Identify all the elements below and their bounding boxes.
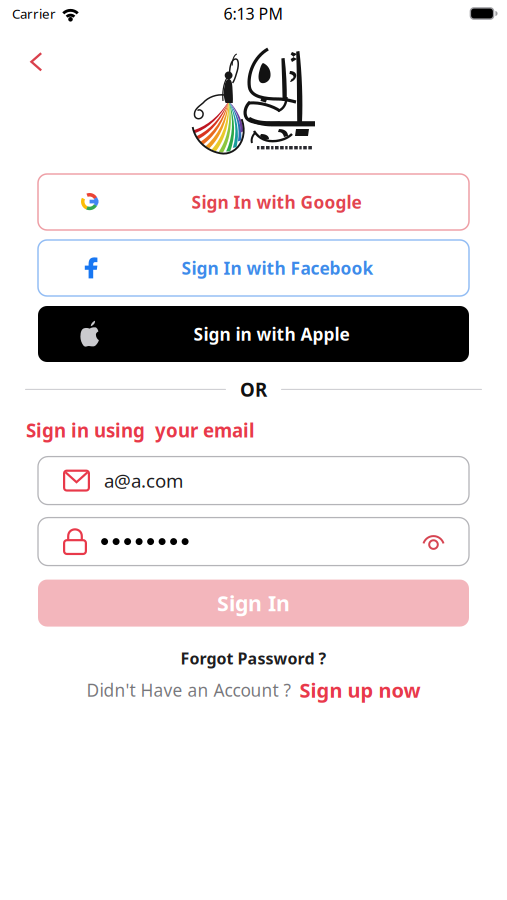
button[interactable]: Sign In [38, 580, 469, 627]
button[interactable]: Forgot Password ? [170, 643, 336, 674]
staticText: Forgot Password ? [180, 648, 326, 669]
staticText: OR [240, 377, 267, 402]
staticText: Sign in using your email [26, 418, 255, 443]
staticText: 6:13 PM [223, 3, 283, 24]
staticText: Sign In with Google [191, 190, 361, 213]
staticText: Sign in with Apple [193, 322, 349, 345]
button[interactable]: Sign in with Apple [38, 306, 469, 362]
staticText: Didn't Have an Account ? [86, 679, 291, 702]
button[interactable]: Sign In with Google [38, 174, 469, 230]
staticText: a@a.com [104, 468, 183, 493]
button[interactable]: Show password [421, 532, 469, 551]
staticText: Sign In [217, 589, 290, 617]
staticText: Sign up now [299, 677, 420, 703]
button[interactable]: Sign In with Facebook [38, 240, 469, 296]
staticText: Carrier [12, 5, 56, 22]
button[interactable]: Back [0, 27, 60, 88]
staticText: Sign In with Facebook [181, 256, 373, 279]
button[interactable]: Sign up now [299, 677, 420, 703]
